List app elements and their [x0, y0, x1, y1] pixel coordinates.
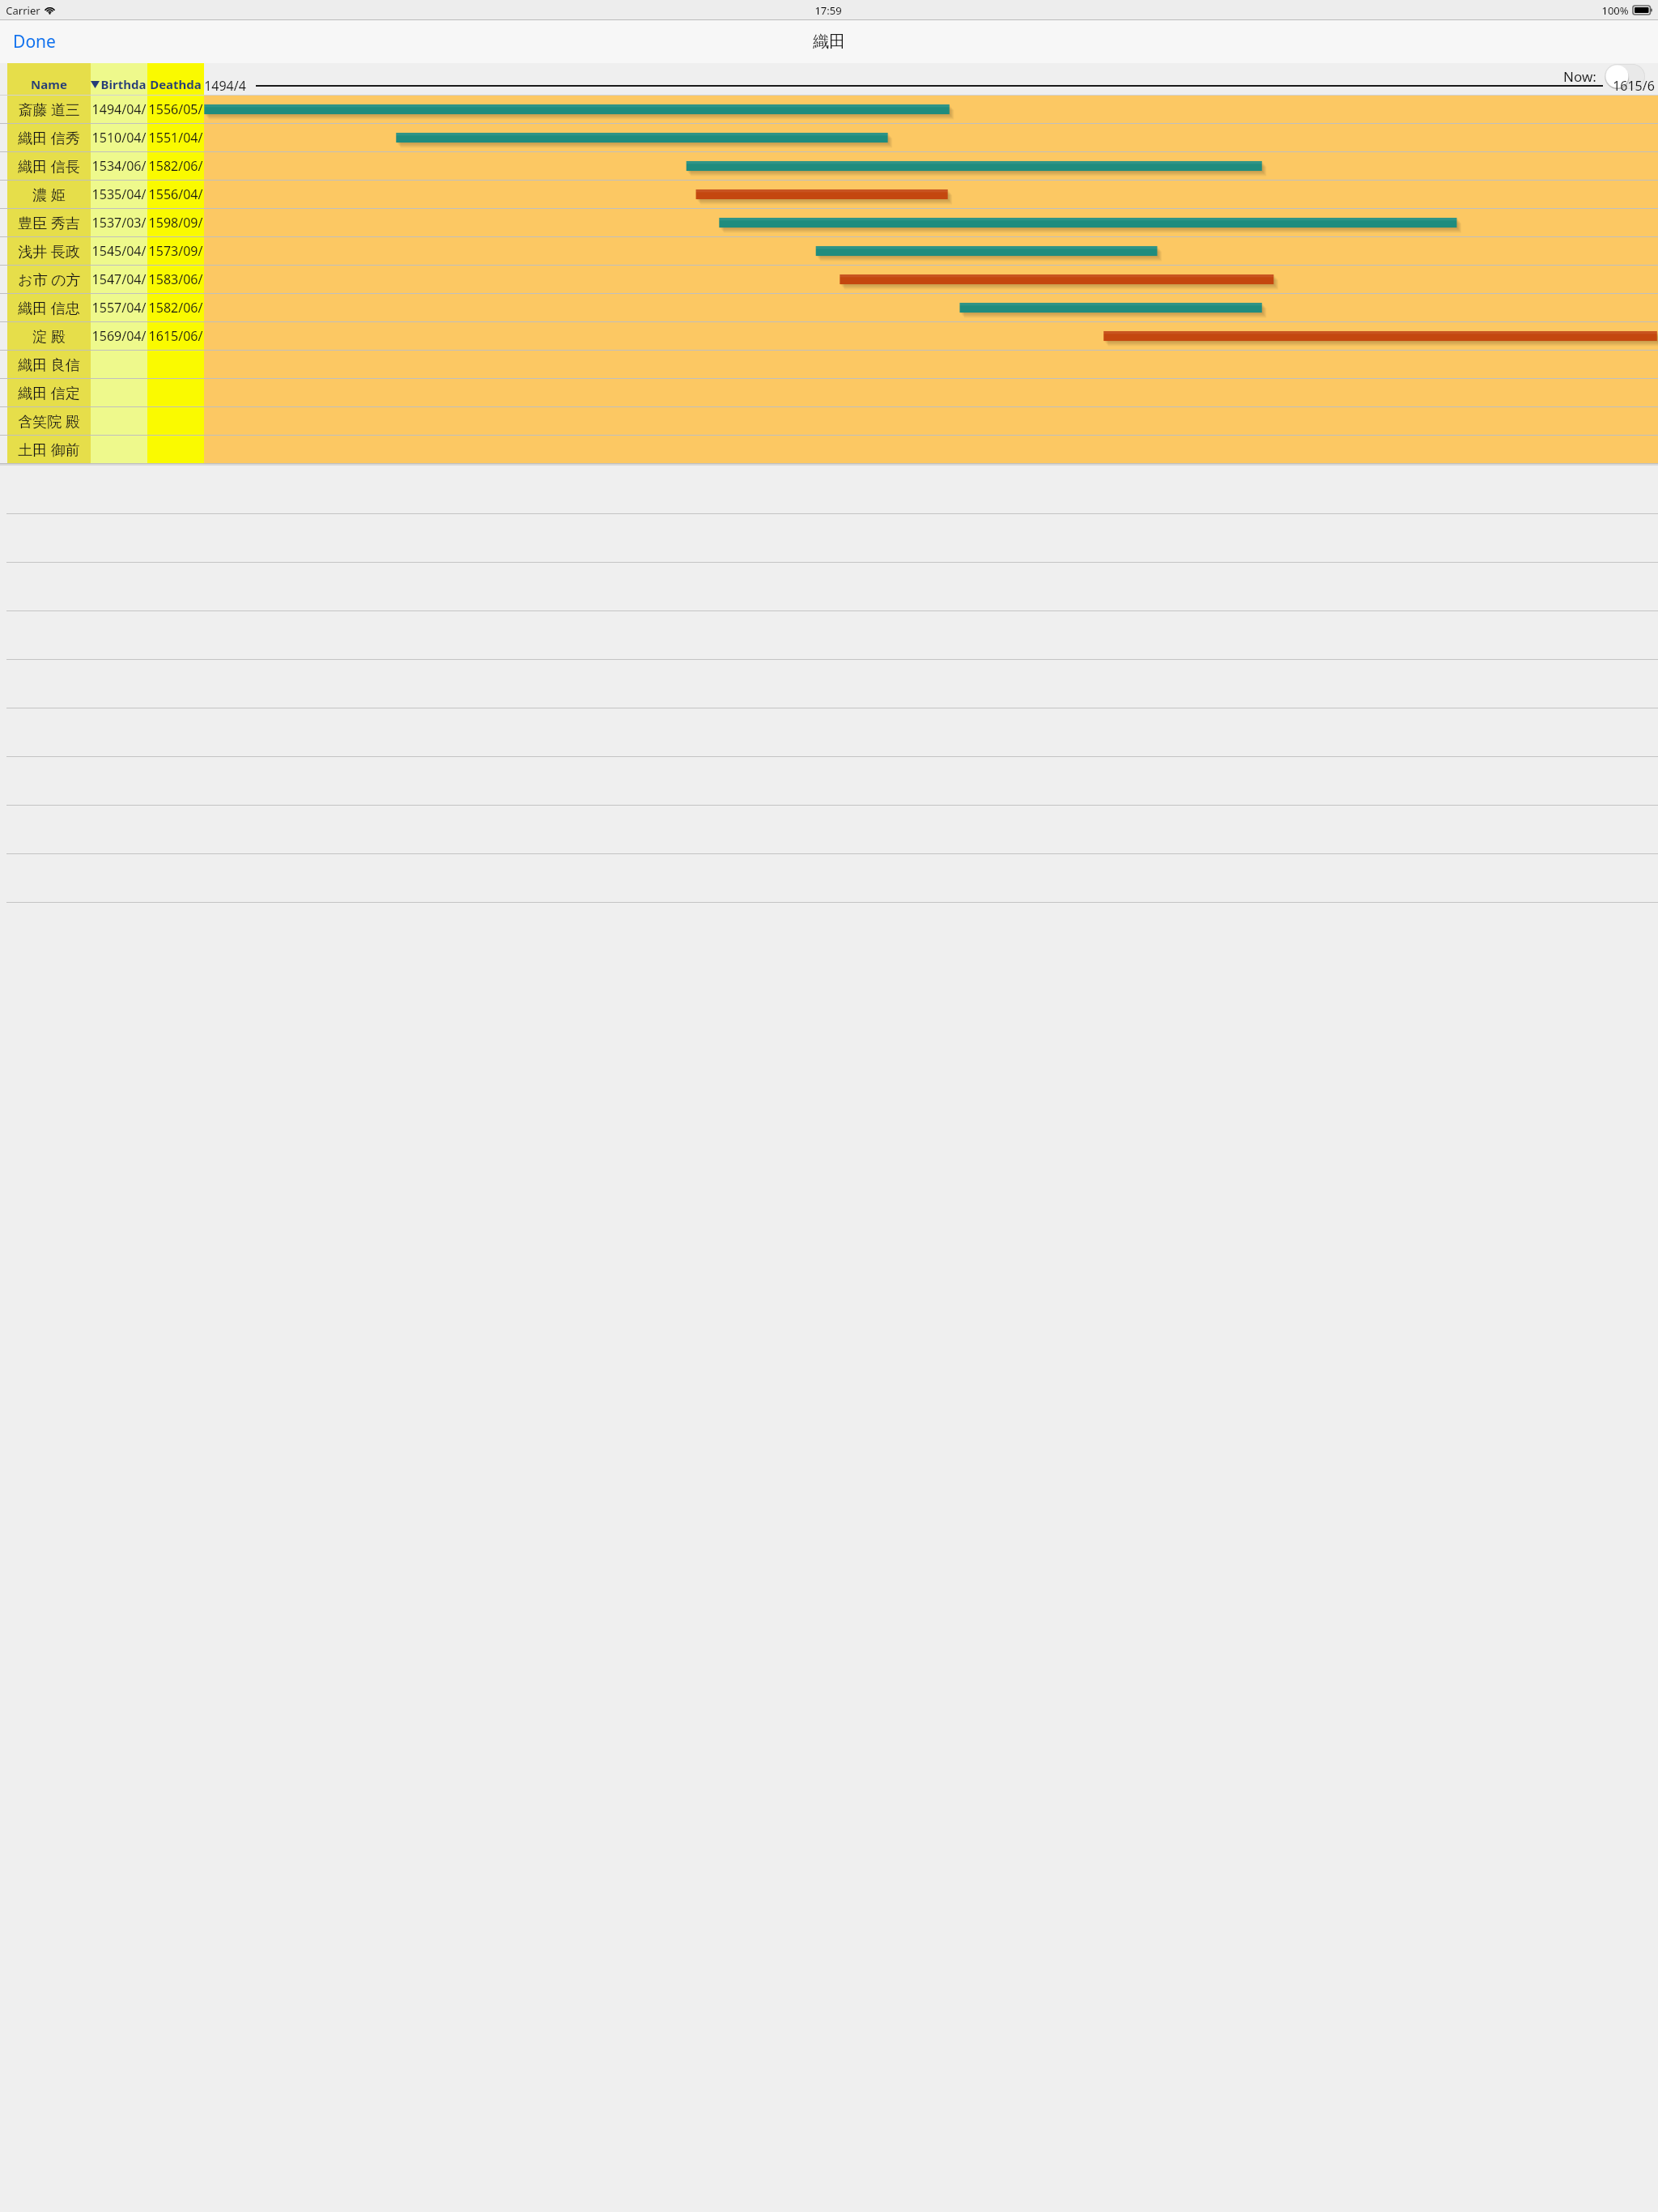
staticText: 豊臣 秀吉	[18, 213, 80, 233]
staticText: 織田 良信	[18, 355, 80, 375]
button[interactable]: 淀 殿	[0, 322, 1658, 350]
button[interactable]: 織田 信秀	[0, 124, 1658, 151]
staticText: 1569/04/11	[91, 327, 147, 345]
staticText: 1582/06/21	[147, 157, 204, 175]
staticText: 1510/04/11	[91, 129, 147, 147]
button[interactable]: Now toggle	[1605, 64, 1645, 89]
button[interactable]: 織田 信定	[0, 379, 1658, 406]
staticText: 1535/04/11	[91, 185, 147, 203]
staticText: 淀 殿	[32, 326, 66, 347]
staticText: 織田 信長	[18, 156, 80, 177]
staticText: 1582/06/21	[147, 299, 204, 317]
staticText: 織田	[813, 32, 845, 52]
button[interactable]	[0, 708, 1658, 756]
staticText: 1545/04/11	[91, 242, 147, 260]
button[interactable]: Name	[7, 63, 91, 96]
button[interactable]: 豊臣 秀吉	[0, 209, 1658, 236]
staticText: 斎藤 道三	[18, 100, 80, 120]
staticText: 濃 姫	[32, 185, 66, 205]
staticText: 1494/4	[204, 77, 246, 95]
button[interactable]: Birthday	[91, 63, 147, 96]
staticText: 浅井 長政	[18, 241, 80, 262]
staticText: 1551/04/08	[147, 129, 204, 147]
button[interactable]: 織田 信忠	[0, 294, 1658, 321]
staticText: 1615/06/04	[147, 327, 204, 345]
staticText: 1583/06/14	[147, 270, 204, 288]
staticText: 1573/09/26	[147, 242, 204, 260]
button[interactable]: Done	[6, 25, 62, 58]
button[interactable]	[0, 757, 1658, 805]
staticText: 含笑院 殿	[18, 411, 80, 432]
button[interactable]	[0, 514, 1658, 562]
staticText: Carrier	[6, 3, 40, 18]
button[interactable]: 浅井 長政	[0, 237, 1658, 265]
button[interactable]: 織田 良信	[0, 351, 1658, 378]
staticText: 1537/03/17	[91, 214, 147, 232]
staticText: 1556/04/11	[147, 185, 204, 203]
button[interactable]: Deathday	[147, 63, 204, 96]
button[interactable]: 斎藤 道三	[0, 96, 1658, 123]
staticText: 1598/09/18	[147, 214, 204, 232]
staticText: Done	[13, 30, 56, 53]
staticText: 1534/06/23	[91, 157, 147, 175]
staticText: 1547/04/11	[91, 270, 147, 288]
staticText: Now:	[1563, 67, 1596, 86]
staticText: 1494/04/11	[91, 100, 147, 118]
button[interactable]: 織田 信長	[0, 152, 1658, 180]
staticText: Deathday	[147, 76, 204, 92]
staticText: Name	[31, 76, 67, 92]
staticText: 織田 信秀	[18, 128, 80, 148]
button[interactable]: 含笑院 殿	[0, 407, 1658, 435]
staticText: 17:59	[814, 3, 842, 18]
staticText: 1556/05/28	[147, 100, 204, 118]
staticText: 1557/04/11	[91, 299, 147, 317]
button[interactable]: お市 の方	[0, 266, 1658, 293]
button[interactable]: 土田 御前	[0, 436, 1658, 463]
staticText: お市 の方	[18, 270, 81, 290]
staticText: Birthday	[100, 76, 147, 92]
button[interactable]: 濃 姫	[0, 181, 1658, 208]
staticText: 織田 信定	[18, 383, 80, 403]
staticText: 1615/6	[1613, 77, 1655, 95]
button[interactable]	[0, 611, 1658, 659]
staticText: 織田 信忠	[18, 298, 80, 318]
staticText: 100%	[1601, 3, 1629, 18]
button[interactable]	[0, 854, 1658, 902]
staticText: 土田 御前	[18, 440, 80, 460]
